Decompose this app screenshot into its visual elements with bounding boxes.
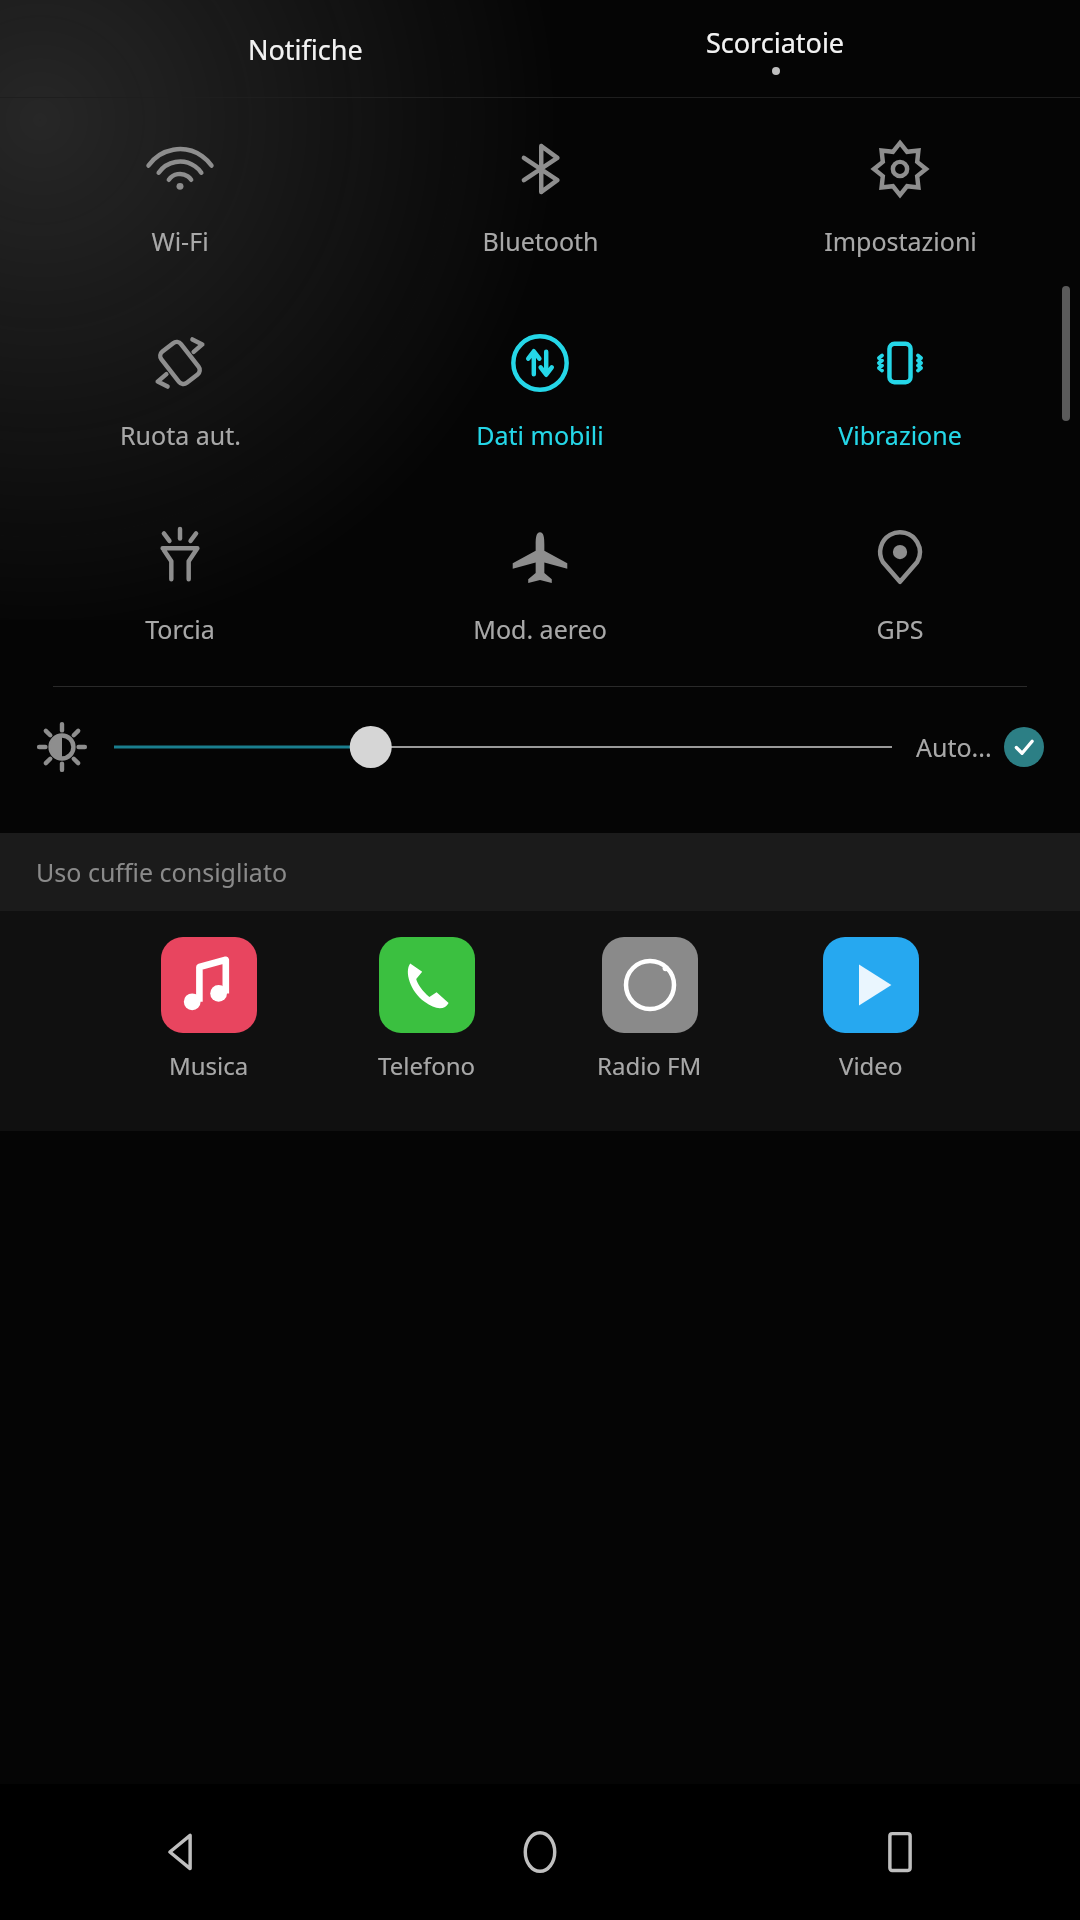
staticText: Scorciatoie: [706, 24, 845, 61]
staticText: Mod. aereo: [473, 612, 607, 646]
staticText: Auto...: [916, 730, 992, 764]
staticText: Musica: [169, 1049, 249, 1082]
staticText: Uso cuffie consigliato: [36, 855, 288, 889]
button[interactable]: Vibrazione: [720, 332, 1080, 452]
staticText: Radio FM: [597, 1049, 702, 1082]
staticText: Ruota aut.: [120, 418, 241, 452]
staticText: Impostazioni: [824, 224, 977, 258]
button[interactable]: Bluetooth: [360, 138, 720, 258]
staticText: vodafone IT: [481, 1803, 599, 1832]
staticText: Telefono: [378, 1049, 476, 1082]
staticText: Video: [839, 1049, 903, 1082]
staticText: Wi-Fi: [151, 224, 209, 258]
button[interactable]: Mod. aereo: [360, 526, 720, 646]
button[interactable]: GPS: [720, 526, 1080, 646]
button[interactable]: Telefono: [378, 937, 476, 1082]
staticText: Vibrazione: [838, 418, 962, 452]
button[interactable]: Torcia: [0, 526, 360, 646]
button[interactable]: Video: [823, 937, 919, 1082]
button[interactable]: [114, 723, 892, 771]
button[interactable]: Uso cuffie consigliato: [0, 833, 1080, 911]
button[interactable]: Musica: [161, 937, 257, 1082]
button[interactable]: Dati mobili: [360, 332, 720, 452]
button[interactable]: Auto...: [916, 727, 1044, 767]
button[interactable]: Back: [0, 1784, 360, 1920]
staticText: Torcia: [145, 612, 215, 646]
button[interactable]: Radio FM: [597, 937, 702, 1082]
button[interactable]: Ruota aut.: [0, 332, 360, 452]
staticText: Dati mobili: [476, 418, 604, 452]
button[interactable]: Wi-Fi: [0, 138, 360, 258]
button[interactable]: Notifiche: [70, 0, 540, 98]
button[interactable]: Home: [360, 1784, 720, 1920]
button[interactable]: Impostazioni: [720, 138, 1080, 258]
staticText: Bluetooth: [482, 224, 599, 258]
button[interactable]: Recent apps: [720, 1784, 1080, 1920]
staticText: GPS: [876, 612, 924, 646]
button[interactable]: Scorciatoie: [540, 0, 1010, 98]
staticText: Notifiche: [248, 31, 363, 68]
